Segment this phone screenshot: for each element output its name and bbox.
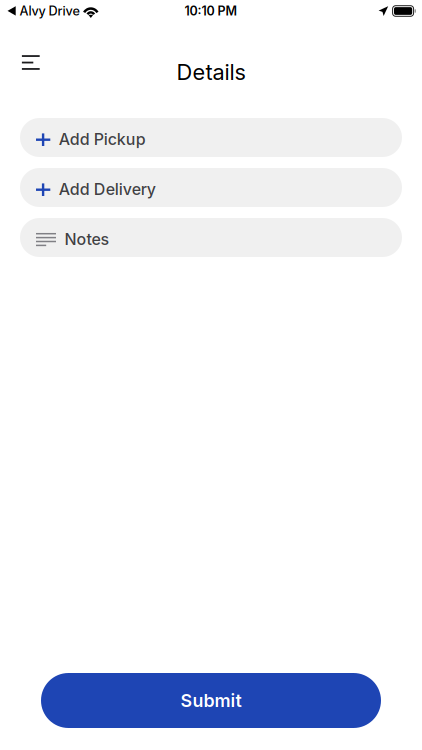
- staticText: 10:10 PM: [184, 3, 237, 19]
- staticText: Add Pickup: [59, 129, 146, 149]
- button[interactable]: Notes: [20, 218, 402, 257]
- button[interactable]: Menu: [9, 40, 53, 84]
- staticText: Add Delivery: [59, 179, 156, 199]
- button[interactable]: Add Delivery: [20, 168, 402, 207]
- staticText: Notes: [64, 229, 109, 249]
- staticText: Alvy Drive: [19, 3, 79, 19]
- staticText: Details: [176, 59, 245, 85]
- button[interactable]: Add Pickup: [20, 118, 402, 157]
- staticText: Submit: [180, 690, 241, 711]
- button[interactable]: Submit: [41, 673, 381, 728]
